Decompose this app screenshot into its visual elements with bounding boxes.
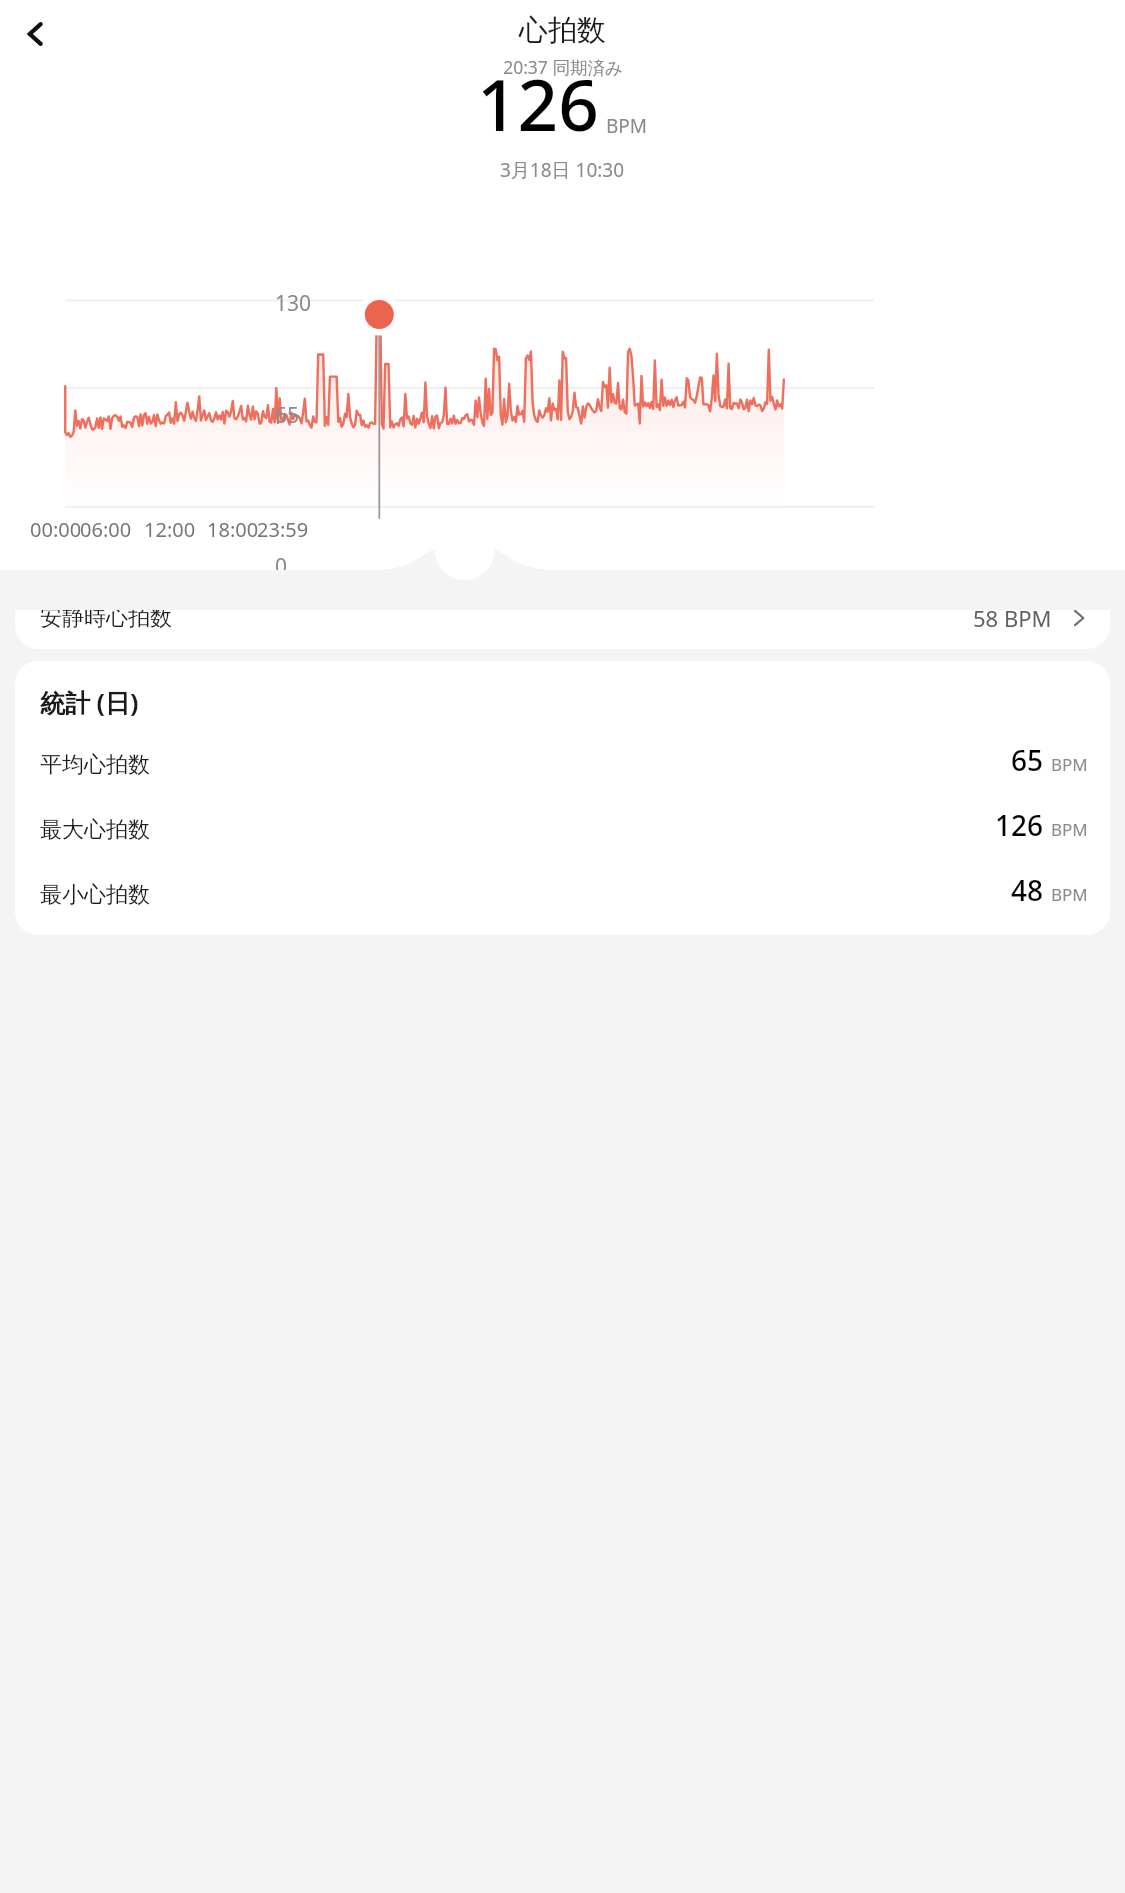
staticText: BPM [1051,883,1088,906]
staticText: 安静時心拍数 [40,604,172,632]
staticText: 最大心拍数 [40,816,150,844]
staticText: 65 [275,401,300,430]
staticText: 65 [1011,741,1044,779]
staticText: 0 [275,552,288,581]
staticText: 126 [995,806,1044,844]
staticText: 12:00 [144,516,196,543]
staticText: 126 [477,55,599,152]
staticText: 48 [1011,871,1044,909]
button[interactable]: 安静時心拍数 [15,586,1110,649]
staticText: BPM [606,113,648,139]
staticText: 平均心拍数 [40,751,150,779]
staticText: 00:00 [30,516,82,543]
staticText: 18:00 [207,516,259,543]
staticText: 130 [275,289,312,318]
staticText: BPM [1051,818,1088,841]
button[interactable]: Back [8,6,64,62]
staticText: 3月18日 10:30 [500,157,625,183]
staticText: 23:59 [257,516,309,543]
staticText: 統計 (日) [40,685,139,719]
staticText: 58 BPM [973,603,1052,633]
staticText: 最小心拍数 [40,881,150,909]
staticText: 心拍数 [519,12,606,49]
staticText: 20:37 同期済み [503,55,623,79]
staticText: BPM [1051,753,1088,776]
staticText: 06:00 [80,516,132,543]
